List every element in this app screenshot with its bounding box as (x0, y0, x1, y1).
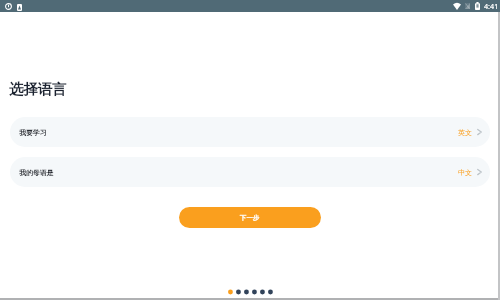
staticText: 我要学习 (19, 128, 47, 137)
staticText: 中文 (458, 168, 472, 177)
other: Battery (475, 2, 480, 10)
staticText: 4:41 (484, 1, 499, 11)
staticText: 英文 (458, 128, 472, 137)
button[interactable]: 我要学习 (10, 117, 490, 147)
button[interactable]: 我的母语是 (10, 157, 490, 187)
other: App notification (17, 4, 22, 11)
staticText: 下一步 (240, 214, 260, 222)
button[interactable]: 下一步 (179, 207, 321, 228)
other: Wi-Fi (453, 3, 461, 10)
staticText: 我的母语是 (19, 168, 54, 177)
staticText: 选择语言 (9, 80, 67, 98)
other: Alarm (5, 3, 12, 10)
other: Mobile signal (465, 3, 470, 9)
